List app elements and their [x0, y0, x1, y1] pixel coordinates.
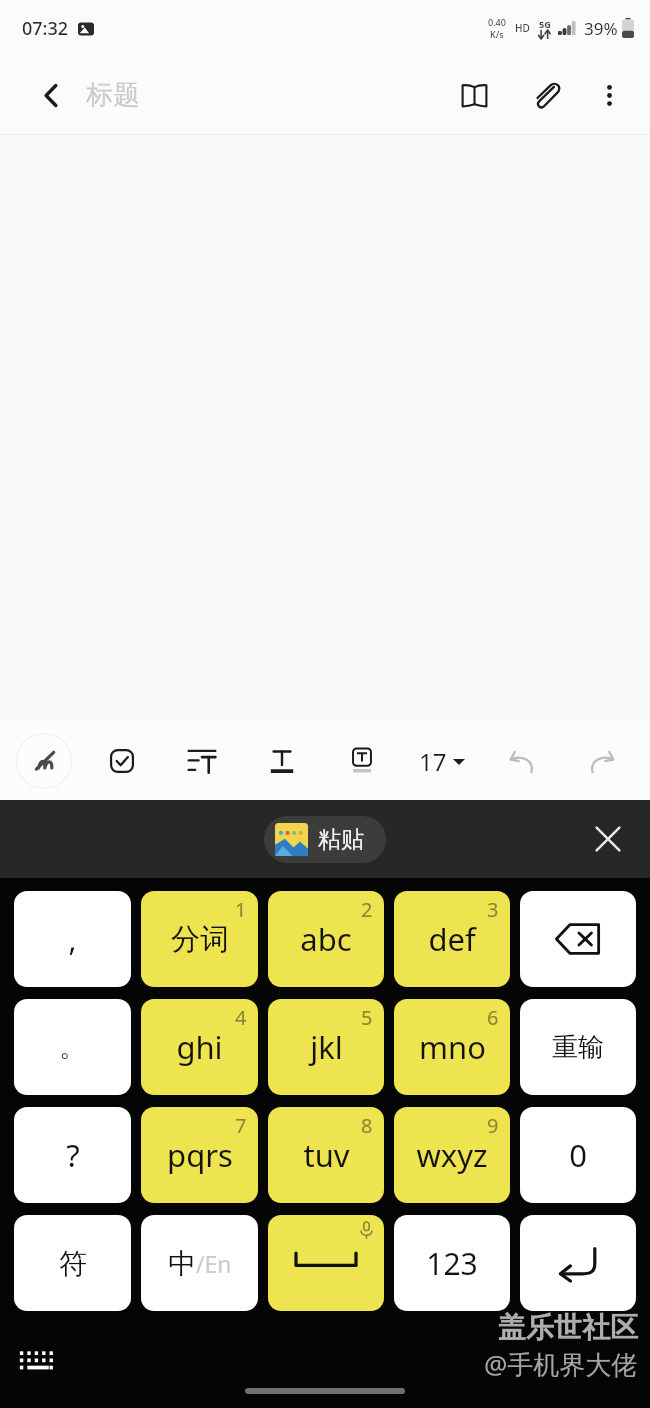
staticText: 盖乐世社区: [498, 1310, 638, 1345]
staticText: mno: [419, 1026, 486, 1068]
staticText: ,: [68, 919, 77, 960]
button[interactable]: Backspace: [520, 891, 636, 987]
staticText: 分词: [171, 921, 229, 958]
button[interactable]: mno: [394, 999, 510, 1095]
button[interactable]: Text format: [258, 737, 306, 785]
button[interactable]: Switch keyboard: [8, 1330, 70, 1392]
staticText: 0.40: [488, 16, 506, 28]
button[interactable]: Text box: [338, 737, 386, 785]
button[interactable]: wxyz: [394, 1107, 510, 1203]
button[interactable]: More options: [584, 70, 634, 120]
staticText: /En: [196, 1248, 232, 1279]
button[interactable]: Reading mode: [448, 69, 500, 121]
button[interactable]: 0: [520, 1107, 636, 1203]
staticText: K/s: [490, 28, 504, 40]
staticText: 5G: [539, 18, 551, 30]
button[interactable]: Handwriting: [16, 733, 72, 789]
button[interactable]: 中: [141, 1215, 258, 1311]
staticText: 2: [361, 896, 373, 923]
staticText: 粘贴: [318, 825, 364, 854]
button[interactable]: 。: [14, 999, 131, 1095]
staticText: 符: [59, 1246, 87, 1281]
button[interactable]: 重输: [520, 999, 636, 1095]
button[interactable]: Paragraph style: [178, 737, 226, 785]
button[interactable]: tuv: [268, 1107, 384, 1203]
staticText: 7: [235, 1112, 247, 1139]
button[interactable]: Space: [268, 1215, 384, 1311]
staticText: ?: [66, 1134, 80, 1176]
staticText: 0: [569, 1134, 587, 1176]
button[interactable]: 17: [414, 739, 470, 784]
staticText: 6: [487, 1004, 499, 1031]
staticText: 1: [235, 896, 247, 923]
button[interactable]: Close: [580, 811, 636, 867]
button[interactable]: Redo: [578, 737, 626, 785]
staticText: abc: [300, 918, 352, 960]
staticText: 123: [426, 1243, 478, 1284]
button[interactable]: 符: [14, 1215, 131, 1311]
staticText: 3: [487, 896, 499, 923]
staticText: 标题: [86, 78, 140, 112]
button[interactable]: abc: [268, 891, 384, 987]
staticText: 17: [419, 745, 447, 778]
staticText: @手机界大佬: [484, 1346, 638, 1382]
staticText: 39%: [584, 17, 618, 40]
staticText: 5: [361, 1004, 373, 1031]
staticText: 重输: [552, 1031, 604, 1064]
button[interactable]: Undo: [498, 737, 546, 785]
staticText: def: [428, 918, 476, 960]
staticText: tuv: [303, 1134, 350, 1176]
button[interactable]: pqrs: [141, 1107, 258, 1203]
staticText: 8: [361, 1112, 373, 1139]
button[interactable]: def: [394, 891, 510, 987]
button[interactable]: 123: [394, 1215, 510, 1311]
button[interactable]: Enter: [520, 1215, 636, 1311]
staticText: jkl: [310, 1026, 343, 1068]
staticText: 中: [168, 1246, 196, 1281]
staticText: HD: [515, 21, 530, 35]
staticText: 。: [59, 1030, 86, 1064]
button[interactable]: Attach: [520, 69, 572, 121]
button[interactable]: ghi: [141, 999, 258, 1095]
button[interactable]: jkl: [268, 999, 384, 1095]
button[interactable]: ,: [14, 891, 131, 987]
button[interactable]: 分词: [141, 891, 258, 987]
button[interactable]: 粘贴: [264, 816, 386, 863]
staticText: wxyz: [416, 1134, 488, 1176]
staticText: 4: [235, 1004, 247, 1031]
staticText: 07:32: [22, 16, 69, 41]
staticText: ghi: [176, 1026, 223, 1068]
staticText: 9: [487, 1112, 499, 1139]
button[interactable]: ?: [14, 1107, 131, 1203]
button[interactable]: Checklist: [98, 737, 146, 785]
button[interactable]: Back: [28, 72, 74, 118]
staticText: pqrs: [167, 1134, 233, 1176]
